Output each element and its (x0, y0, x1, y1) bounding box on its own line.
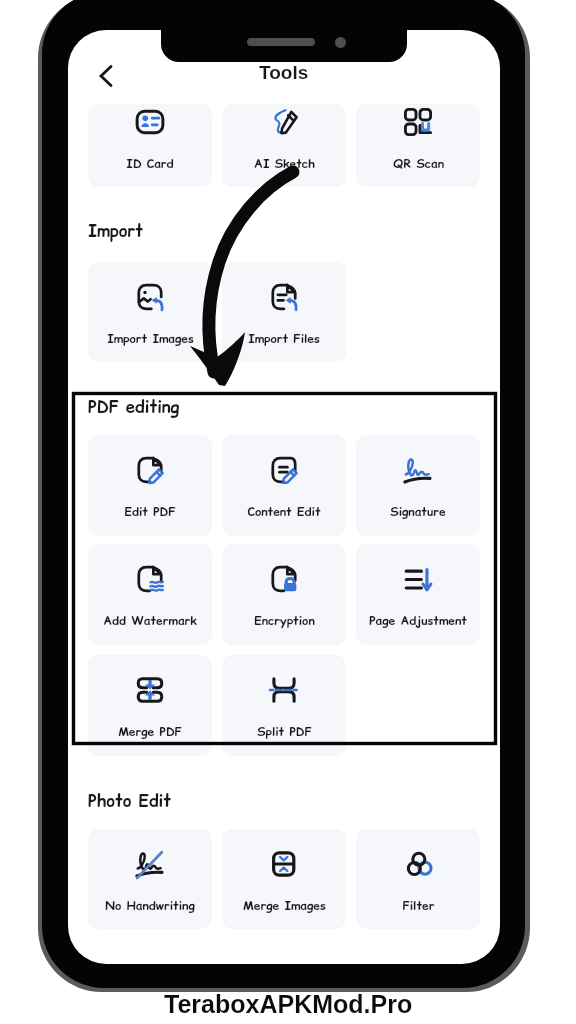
button[interactable]: Signature (356, 435, 480, 536)
button[interactable]: Add Watermark (88, 544, 212, 645)
button[interactable]: Split PDF (222, 655, 346, 756)
button[interactable]: Edit PDF (88, 435, 212, 536)
staticText: TeraboxAPKMod.Pro (164, 990, 413, 1018)
button[interactable]: Import Images (88, 262, 212, 362)
staticText: Split PDF (257, 723, 312, 740)
button[interactable]: AI Sketch (222, 104, 346, 187)
button[interactable]: Merge PDF (88, 655, 212, 756)
staticText: Filter (402, 897, 435, 914)
staticText: Encryption (254, 612, 315, 629)
button[interactable]: Encryption (222, 544, 346, 645)
button[interactable]: Import Files (222, 262, 346, 362)
button[interactable]: QR Scan (356, 104, 480, 187)
button[interactable]: No Handwriting (88, 829, 212, 929)
button[interactable]: Page Adjustment (356, 544, 480, 645)
staticText: AI Sketch (254, 155, 315, 172)
button[interactable]: Merge Images (222, 829, 346, 929)
staticText: QR Scan (393, 155, 444, 172)
staticText: Add Watermark (103, 612, 197, 629)
button[interactable]: Filter (356, 829, 480, 929)
staticText: Page Adjustment (369, 612, 467, 629)
button[interactable]: Back (84, 56, 124, 96)
staticText: Merge PDF (118, 723, 182, 740)
staticText: Content Edit (247, 503, 321, 520)
staticText: Signature (390, 503, 446, 520)
staticText: Edit PDF (124, 503, 176, 520)
staticText: PDF editing (88, 396, 180, 419)
staticText: Photo Edit (88, 790, 171, 813)
button[interactable]: Content Edit (222, 435, 346, 536)
staticText: Import Images (107, 330, 194, 347)
staticText: Import Files (248, 330, 320, 347)
staticText: ID Card (126, 155, 174, 172)
staticText: No Handwriting (105, 897, 195, 914)
staticText: Tools (259, 62, 309, 83)
staticText: Merge Images (243, 897, 326, 914)
button[interactable]: ID Card (88, 104, 212, 187)
staticText: Import (88, 220, 144, 243)
